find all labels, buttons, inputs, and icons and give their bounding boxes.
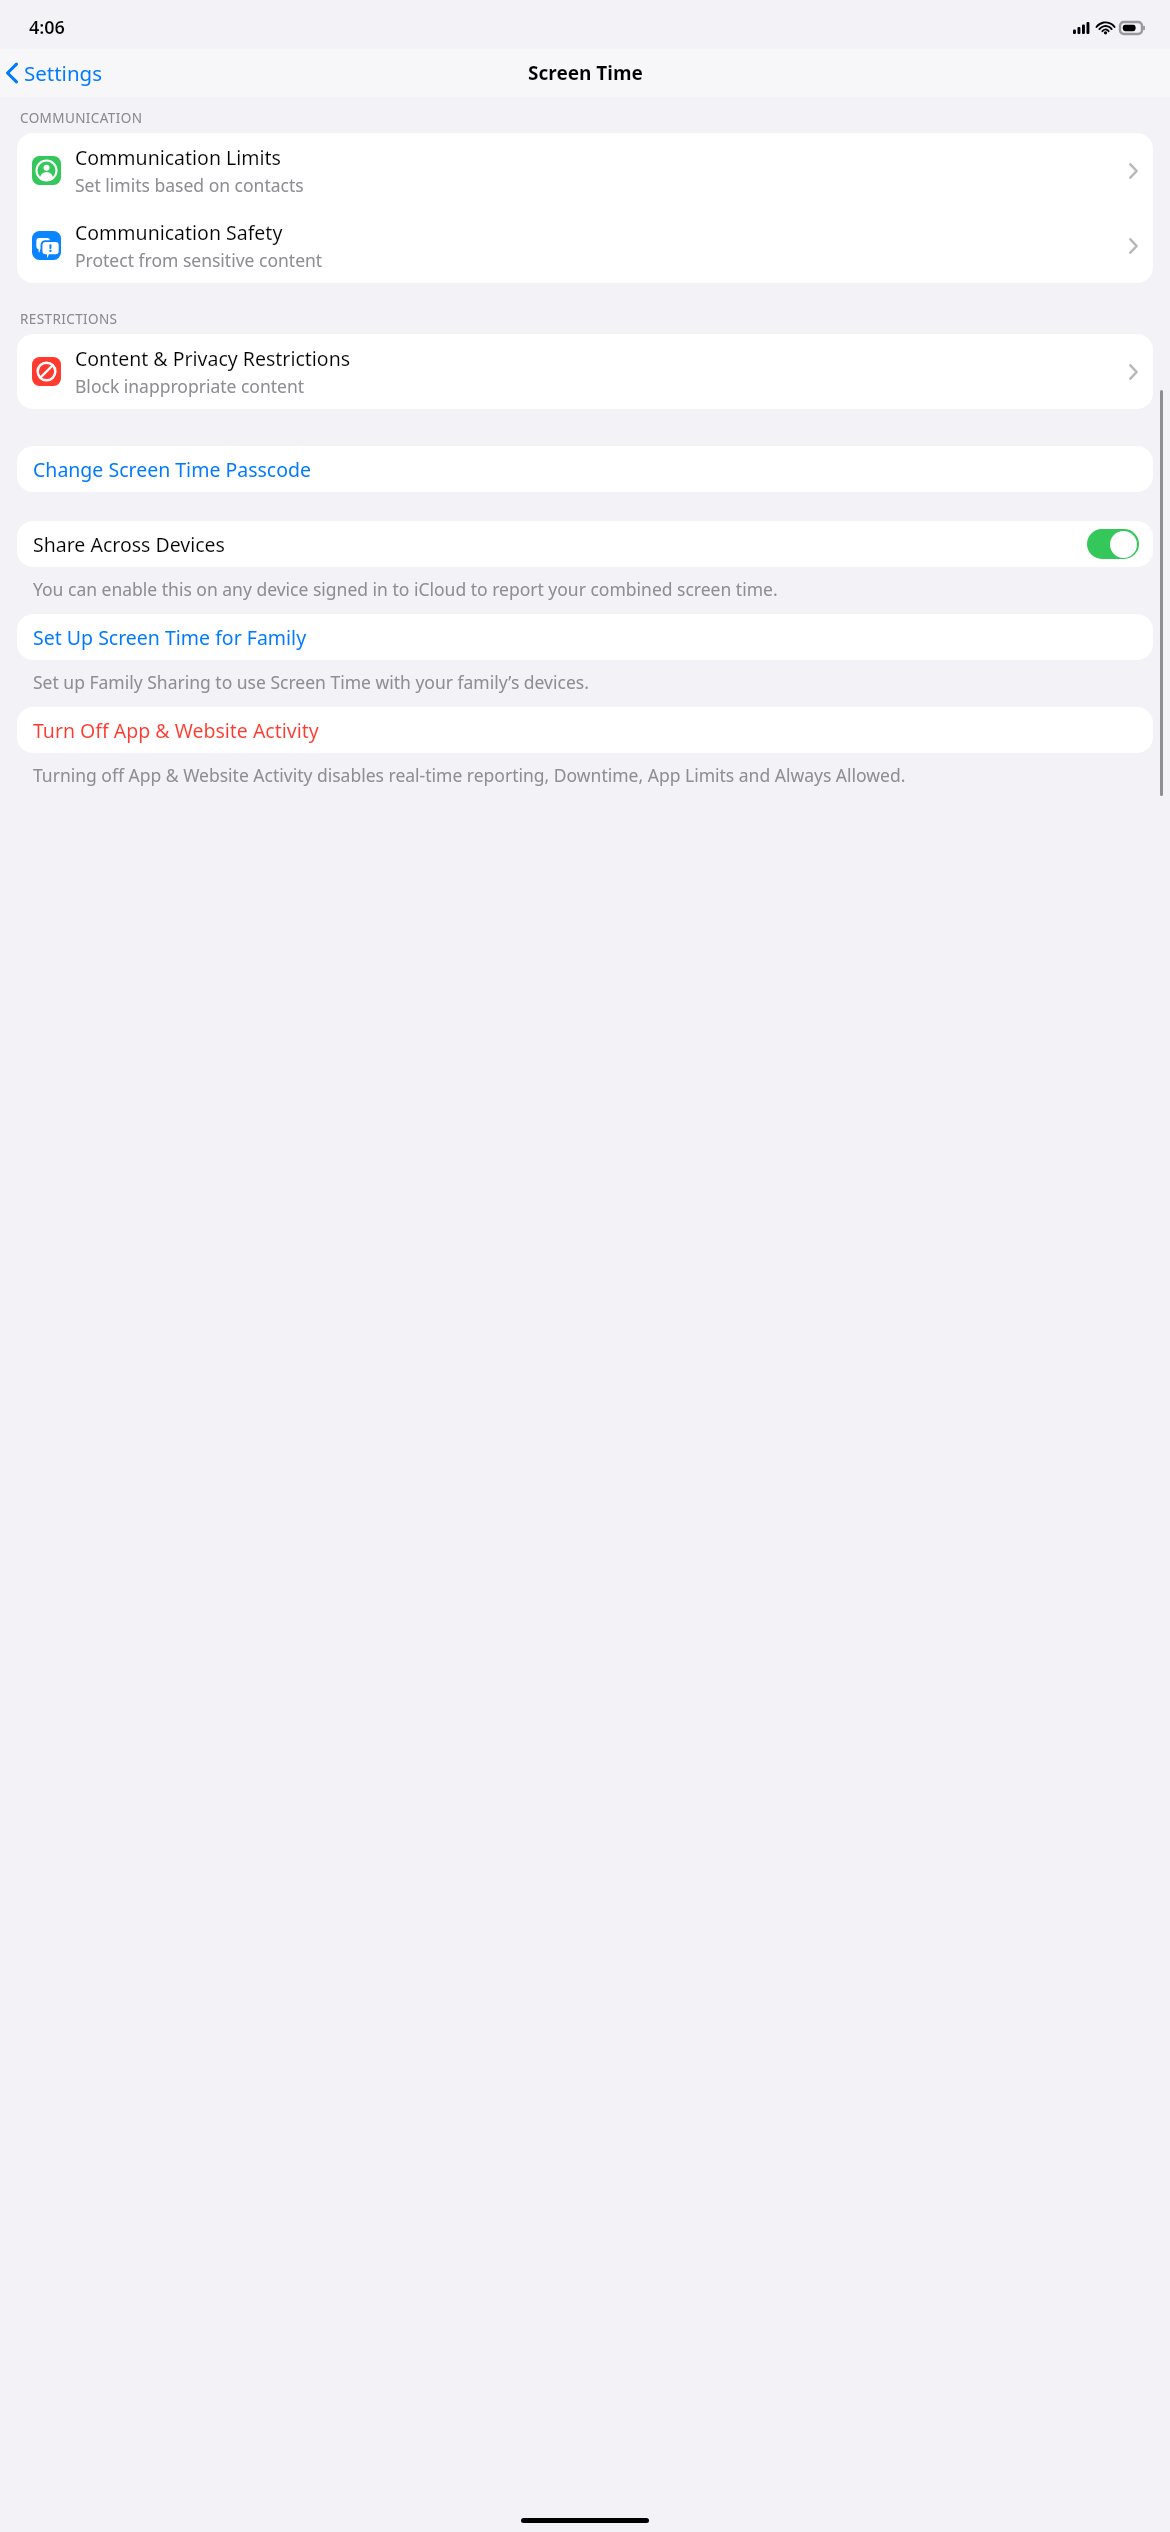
button[interactable]: Communication Limits xyxy=(17,133,1153,208)
staticText: Set limits based on contacts xyxy=(75,173,304,197)
staticText: Set up Family Sharing to use Screen Time… xyxy=(33,670,1137,694)
staticText: Communication Limits xyxy=(75,144,281,171)
button[interactable]: Communication Safety xyxy=(17,208,1153,283)
button[interactable]: Share Across Devices xyxy=(17,521,1153,567)
staticText: Block inappropriate content xyxy=(75,374,305,398)
staticText: Change Screen Time Passcode xyxy=(33,456,312,483)
other: Share Across Devices toggle, on xyxy=(1087,529,1139,559)
staticText: Share Across Devices xyxy=(33,531,1087,558)
staticText: Protect from sensitive content xyxy=(75,248,323,272)
staticText: Communication Safety xyxy=(75,219,283,246)
button[interactable]: Set Up Screen Time for Family xyxy=(17,614,1153,660)
staticText: COMMUNICATION xyxy=(20,109,143,127)
button[interactable]: Content & Privacy Restrictions xyxy=(17,334,1153,409)
staticText: Set Up Screen Time for Family xyxy=(33,624,307,651)
staticText: Settings xyxy=(24,59,103,87)
staticText: Screen Time xyxy=(528,60,643,86)
button[interactable]: Turn Off App & Website Activity xyxy=(17,707,1153,753)
staticText: Turning off App & Website Activity disab… xyxy=(33,763,1137,787)
staticText: Content & Privacy Restrictions xyxy=(75,345,351,372)
staticText: RESTRICTIONS xyxy=(20,310,118,328)
staticText: 4:06 xyxy=(29,15,65,40)
button[interactable]: Settings xyxy=(0,55,111,91)
button[interactable]: Change Screen Time Passcode xyxy=(17,446,1153,492)
staticText: You can enable this on any device signed… xyxy=(33,577,1137,601)
staticText: Turn Off App & Website Activity xyxy=(33,717,319,744)
